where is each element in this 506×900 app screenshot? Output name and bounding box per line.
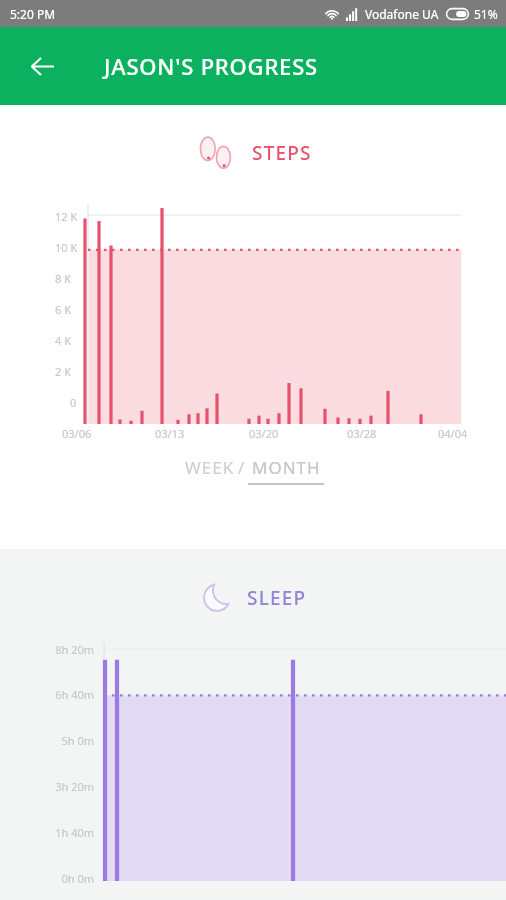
staticText: 12 K [55, 209, 78, 224]
staticText: 03/20 [249, 426, 279, 441]
staticText: JASON'S PROGRESS [104, 51, 318, 81]
staticText: 0 [70, 395, 77, 410]
staticText: 5:20 PM [10, 6, 56, 22]
staticText: 04/04 [438, 426, 468, 441]
staticText: 4 K [55, 333, 71, 348]
staticText: STEPS [252, 140, 312, 166]
staticText: / [238, 456, 245, 479]
staticText: WEEK [185, 456, 235, 479]
staticText: 8 K [55, 271, 71, 286]
staticText: 2 K [55, 364, 71, 379]
staticText: 51% [474, 6, 498, 22]
staticText: 3h 20m [24, 779, 94, 794]
button[interactable]: WEEK [182, 456, 238, 479]
staticText: 5h 0m [24, 733, 94, 748]
button[interactable]: MONTH [245, 456, 324, 485]
staticText: 8h 20m [24, 642, 94, 657]
staticText: 0h 0m [24, 871, 94, 886]
staticText: 1h 40m [24, 825, 94, 840]
button[interactable]: Back [18, 42, 66, 90]
staticText: Vodafone UA [365, 6, 439, 22]
staticText: SLEEP [247, 585, 307, 611]
staticText: 6 K [55, 302, 71, 317]
staticText: 03/13 [155, 426, 185, 441]
staticText: 10 K [55, 240, 78, 255]
staticText: 6h 40m [24, 687, 94, 702]
staticText: MONTH [252, 456, 321, 479]
staticText: 03/28 [347, 426, 377, 441]
staticText: 03/06 [62, 426, 92, 441]
